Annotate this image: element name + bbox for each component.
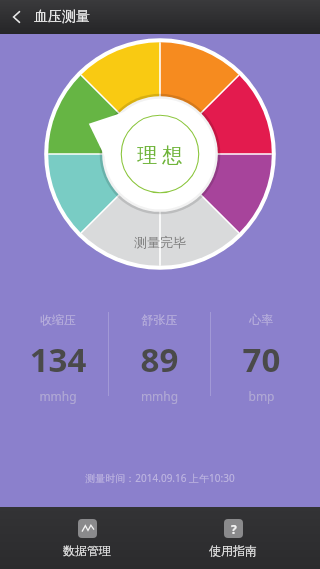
button[interactable]: ?: [173, 519, 293, 558]
staticText: 70: [211, 337, 312, 382]
staticText: 收缩压: [8, 312, 108, 327]
button[interactable]: 数据管理: [27, 519, 147, 558]
staticText: 心率: [211, 312, 312, 327]
staticText: 舒张压: [109, 312, 210, 327]
button[interactable]: 收缩压: [8, 312, 108, 404]
staticText: ?: [231, 521, 237, 537]
staticText: 数据管理: [27, 543, 147, 558]
staticText: 89: [109, 337, 210, 382]
staticText: mmhg: [109, 388, 210, 404]
button[interactable]: 舒张压: [109, 312, 210, 404]
staticText: 134: [8, 337, 108, 382]
staticText: 测量完毕: [134, 234, 186, 250]
button[interactable]: Back: [0, 0, 34, 34]
staticText: bmp: [211, 388, 312, 404]
button[interactable]: 心率: [211, 312, 312, 404]
staticText: 使用指南: [173, 543, 293, 558]
staticText: mmhg: [8, 388, 108, 404]
staticText: 测量时间：2014.09.16 上午10:30: [0, 471, 320, 485]
staticText: 理 想: [137, 141, 183, 168]
staticText: 血压测量: [34, 8, 90, 26]
